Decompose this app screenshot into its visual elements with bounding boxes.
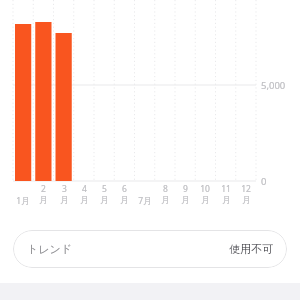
staticText: 8	[163, 183, 168, 195]
staticText: 7月	[135, 195, 155, 207]
staticText: 月	[39, 195, 48, 206]
staticText: 5,000	[261, 79, 286, 92]
staticText: 月	[80, 195, 89, 206]
staticText: 6	[122, 183, 127, 195]
staticText: 月	[100, 195, 109, 206]
staticText: 5	[102, 183, 107, 195]
staticText: 月	[161, 195, 170, 206]
staticText: 使用不可	[229, 242, 273, 256]
staticText: 3	[62, 183, 67, 195]
staticText: 4	[82, 183, 87, 195]
staticText: 10	[200, 183, 210, 195]
staticText: 月	[201, 195, 210, 206]
staticText: 9	[183, 183, 188, 195]
staticText: 月	[181, 195, 190, 206]
staticText: 月	[242, 195, 251, 206]
staticText: 月	[222, 195, 231, 206]
staticText: トレンド	[27, 242, 73, 256]
staticText: 11	[221, 183, 231, 195]
staticText: 12	[241, 183, 251, 195]
button[interactable]: トレンド	[13, 230, 287, 268]
staticText: 月	[60, 195, 69, 206]
staticText: 0	[261, 175, 267, 188]
staticText: 2	[41, 183, 46, 195]
staticText: 月	[120, 195, 129, 206]
staticText: 1月	[13, 195, 33, 207]
